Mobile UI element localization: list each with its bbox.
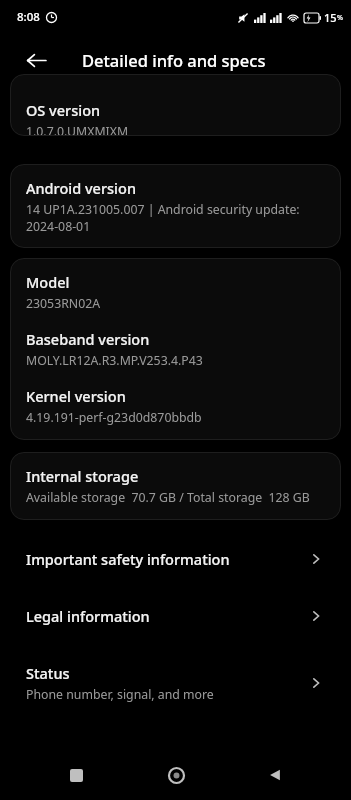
staticText: MOLY.LR12A.R3.MP.V253.4.P43 [26,352,203,369]
staticText: Available storage 70.7 GB / Total storag… [26,489,310,506]
staticText: Android version [26,178,136,198]
button[interactable]: Back [14,38,58,82]
staticText: Important safety information [26,549,230,569]
staticText: Detailed info and specs [82,49,266,71]
staticText: 14 UP1A.231005.007 | Android security up… [26,201,300,234]
staticText: % [337,13,343,23]
button[interactable]: Recents [52,751,100,799]
button[interactable]: Android version [10,164,341,248]
staticText: 15 [324,10,337,25]
button[interactable]: Home [152,751,200,799]
button[interactable]: OS version [10,74,341,136]
staticText: 8:08 [17,9,40,25]
staticText: 1.0.7.0.UMXMIXM [26,123,129,136]
staticText: 4.19.191-perf-g23d0d870bbdb [26,409,202,426]
staticText: Phone number, signal, and more [26,686,214,703]
button[interactable]: Important safety information [0,535,351,583]
button[interactable]: Internal storage [10,452,341,520]
staticText: OS version [26,100,101,120]
button[interactable]: Status [0,649,351,717]
staticText: Internal storage [26,466,139,486]
staticText: Model [26,272,70,292]
button[interactable]: Model [10,258,341,440]
staticText: Baseband version [26,329,150,349]
staticText: Kernel version [26,386,126,406]
staticText: Legal information [26,606,150,626]
button[interactable]: Back [251,751,299,799]
button[interactable]: Legal information [0,592,351,640]
staticText: 23053RN02A [26,295,101,312]
staticText: Status [26,663,70,683]
